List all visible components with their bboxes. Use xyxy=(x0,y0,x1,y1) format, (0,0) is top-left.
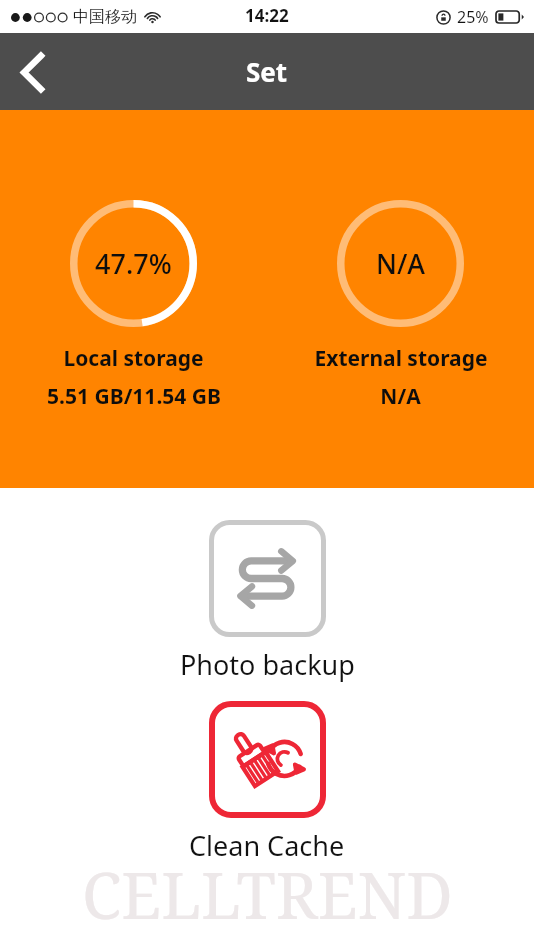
staticText: N/A xyxy=(380,382,421,411)
button[interactable]: Clean Cache xyxy=(189,701,345,864)
staticText: 47.7% xyxy=(95,245,172,282)
button[interactable]: Photo backup xyxy=(180,520,355,683)
staticText: 14:22 xyxy=(245,4,289,27)
staticText: Photo backup xyxy=(180,646,355,683)
staticText: 中国移动 xyxy=(73,7,137,27)
staticText: CELLTREND xyxy=(82,851,453,938)
staticText: Set xyxy=(246,54,288,89)
button[interactable]: Back xyxy=(0,40,64,104)
staticText: External storage xyxy=(314,344,488,373)
staticText: 5.51 GB/11.54 GB xyxy=(47,382,221,411)
staticText: N/A xyxy=(376,245,426,282)
staticText: Clean Cache xyxy=(189,827,345,864)
staticText: 25% xyxy=(457,6,489,28)
staticText: Local storage xyxy=(63,344,204,373)
